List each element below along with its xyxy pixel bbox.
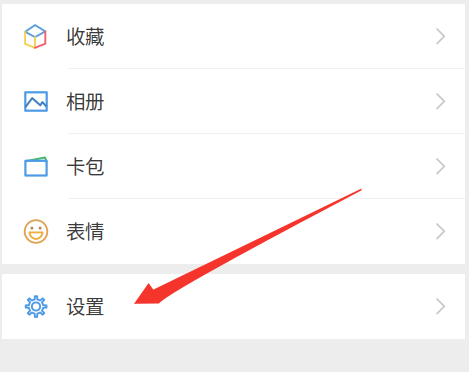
staticText: 收藏: [66, 21, 104, 50]
staticText: 表情: [66, 216, 104, 245]
staticText: 相册: [66, 86, 104, 115]
button[interactable]: 卡包: [0, 134, 469, 199]
button[interactable]: 表情: [0, 199, 469, 264]
button[interactable]: 设置: [0, 274, 469, 339]
staticText: 设置: [66, 291, 104, 320]
staticText: 卡包: [66, 151, 104, 180]
button[interactable]: 收藏: [0, 4, 469, 69]
button[interactable]: 相册: [0, 69, 469, 134]
